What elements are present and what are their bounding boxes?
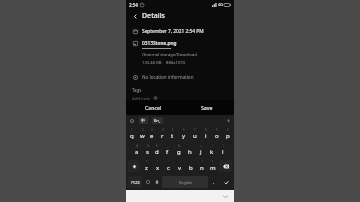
- staticText: 2:54: [129, 2, 138, 8]
- button[interactable]: +: [195, 143, 206, 157]
- staticText: h: [188, 148, 192, 156]
- button[interactable]: Shift: [128, 160, 140, 172]
- button[interactable]: ': [163, 159, 174, 173]
- staticText: r: [161, 132, 164, 140]
- button[interactable]: Voice input: [225, 117, 232, 124]
- staticText: Add tags: [132, 96, 151, 100]
- button[interactable]: 7: [189, 127, 200, 141]
- staticText: l: [222, 148, 224, 156]
- staticText: 8: [205, 128, 207, 132]
- staticText: 7: [194, 128, 196, 132]
- staticText: 4G: [218, 2, 223, 7]
- staticText: v: [178, 164, 182, 172]
- button[interactable]: 4: [157, 127, 167, 141]
- staticText: b: [189, 164, 193, 172]
- staticText: *: [146, 160, 148, 164]
- button[interactable]: Add tags: [132, 96, 158, 100]
- button[interactable]: Emoji: [143, 175, 152, 189]
- staticText: @: [136, 144, 139, 148]
- button[interactable]: #: [142, 143, 152, 157]
- button[interactable]: Back: [130, 11, 140, 21]
- staticText: ': [168, 160, 169, 164]
- button[interactable]: 3: [147, 127, 157, 141]
- button[interactable]: 0313Stone.png: [142, 40, 177, 49]
- button[interactable]: -: [184, 143, 195, 157]
- staticText: e: [150, 132, 154, 140]
- button[interactable]: $: [152, 143, 162, 157]
- staticText: (: [212, 144, 213, 148]
- button[interactable]: Voice input: [152, 175, 161, 189]
- staticText: ?: [212, 160, 214, 164]
- button[interactable]: ;: [185, 159, 196, 173]
- staticText: En,: [154, 118, 161, 124]
- staticText: ;: [191, 160, 192, 164]
- button[interactable]: 5: [167, 127, 178, 141]
- staticText: _: [167, 144, 169, 148]
- button[interactable]: Backspace: [219, 160, 232, 172]
- button[interactable]: !: [196, 159, 207, 173]
- button[interactable]: _: [162, 143, 173, 157]
- button[interactable]: ): [217, 143, 228, 157]
- button[interactable]: ?123: [128, 176, 142, 188]
- staticText: 0313Stone.png: [142, 40, 177, 47]
- button[interactable]: :: [174, 159, 185, 173]
- button[interactable]: 0: [222, 127, 233, 141]
- button[interactable]: English: [162, 176, 208, 188]
- staticText: English: [179, 180, 192, 185]
- staticText: a: [135, 148, 139, 156]
- button[interactable]: .: [209, 175, 219, 189]
- staticText: s: [146, 148, 149, 156]
- button[interactable]: Save: [180, 100, 234, 115]
- button[interactable]: 中: [141, 117, 146, 124]
- staticText: t: [171, 132, 174, 140]
- staticText: p: [226, 132, 230, 140]
- button[interactable]: (: [206, 143, 217, 157]
- button[interactable]: 8: [200, 127, 211, 141]
- staticText: n: [200, 164, 204, 172]
- staticText: k: [210, 148, 214, 156]
- button[interactable]: Settings: [128, 117, 135, 124]
- staticText: 3: [151, 128, 153, 132]
- button[interactable]: 9: [211, 127, 222, 141]
- staticText: m: [210, 164, 216, 172]
- staticText: i: [205, 132, 207, 140]
- staticText: 133.46 KB: [142, 60, 162, 66]
- staticText: 0: [227, 128, 229, 132]
- staticText: z: [145, 164, 148, 172]
- button[interactable]: 1: [127, 127, 137, 141]
- staticText: #: [147, 144, 149, 148]
- staticText: 4: [162, 128, 164, 132]
- staticText: 1: [131, 128, 133, 132]
- staticText: Details: [142, 11, 166, 21]
- button[interactable]: Cancel: [126, 100, 180, 115]
- button[interactable]: En,: [154, 117, 161, 124]
- button[interactable]: ": [152, 159, 163, 173]
- button[interactable]: *: [141, 159, 152, 173]
- staticText: y: [182, 132, 186, 140]
- staticText: 5: [172, 128, 174, 132]
- staticText: ": [157, 160, 159, 164]
- staticText: -: [190, 144, 191, 148]
- staticText: No location information: [142, 74, 194, 80]
- staticText: 6: [183, 128, 185, 132]
- button[interactable]: 2: [137, 127, 147, 141]
- staticText: w: [140, 132, 145, 140]
- staticText: 中: [141, 118, 146, 123]
- staticText: Tags: [132, 87, 142, 93]
- staticText: q: [130, 132, 134, 140]
- staticText: f: [166, 148, 169, 156]
- staticText: :: [180, 160, 181, 164]
- staticText: September 7, 2021 2:54 PM: [142, 28, 204, 35]
- button[interactable]: 6: [178, 127, 189, 141]
- staticText: g: [177, 148, 181, 156]
- button[interactable]: ?: [207, 159, 218, 173]
- button[interactable]: &: [173, 143, 184, 157]
- staticText: 2: [142, 128, 144, 132]
- staticText: &: [178, 144, 181, 148]
- staticText: u: [193, 132, 197, 140]
- button[interactable]: @: [132, 143, 142, 157]
- staticText: !: [202, 160, 203, 164]
- staticText: 884x1074: [166, 60, 185, 66]
- staticText: d: [155, 148, 159, 156]
- button[interactable]: Done: [219, 175, 233, 189]
